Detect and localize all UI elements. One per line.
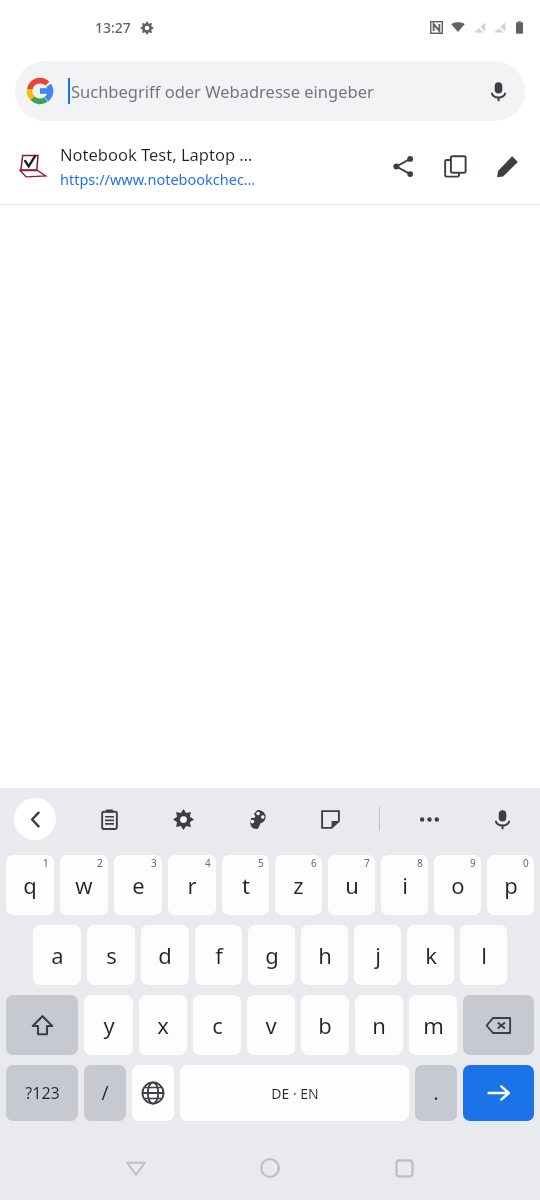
staticText: Notebook Test, Laptop …: [60, 143, 253, 165]
staticText: 4: [205, 856, 211, 870]
staticText: 9: [470, 856, 476, 870]
button[interactable]: DE · EN: [180, 1065, 409, 1121]
button[interactable]: Share: [377, 140, 429, 192]
staticText: g: [265, 940, 279, 970]
staticText: 8: [417, 856, 423, 870]
button[interactable]: z: [275, 855, 322, 915]
button[interactable]: Clipboard: [88, 798, 130, 840]
button[interactable]: Change language: [132, 1065, 174, 1121]
button[interactable]: g: [248, 925, 295, 985]
button[interactable]: .: [415, 1065, 457, 1121]
button[interactable]: More options: [408, 798, 450, 840]
button[interactable]: Shift: [6, 995, 78, 1055]
button[interactable]: t: [222, 855, 269, 915]
button[interactable]: Settings: [162, 798, 204, 840]
staticText: p: [504, 870, 518, 900]
staticText: w: [75, 870, 93, 900]
button[interactable]: r: [168, 855, 216, 915]
staticText: 5: [258, 856, 264, 870]
button[interactable]: Copy: [429, 140, 481, 192]
button[interactable]: ?123: [6, 1065, 78, 1121]
staticText: u: [345, 870, 359, 900]
staticText: 6: [311, 856, 317, 870]
staticText: y: [103, 1010, 115, 1040]
staticText: z: [293, 870, 304, 900]
button[interactable]: v: [247, 995, 295, 1055]
button[interactable]: n: [355, 995, 403, 1055]
button[interactable]: i: [381, 855, 428, 915]
button[interactable]: l: [460, 925, 507, 985]
button[interactable]: j: [354, 925, 401, 985]
staticText: s: [106, 940, 117, 970]
staticText: https://www.notebookchec…: [60, 169, 256, 189]
button[interactable]: Enter: [463, 1065, 534, 1121]
button[interactable]: Back: [14, 798, 56, 840]
staticText: n: [372, 1010, 386, 1040]
staticText: c: [212, 1010, 223, 1040]
staticText: Suchbegriff oder Webadresse eingeber: [71, 80, 374, 102]
button[interactable]: Back: [112, 1144, 160, 1192]
button[interactable]: w: [60, 855, 108, 915]
staticText: q: [23, 870, 37, 900]
button[interactable]: Theme: [236, 798, 278, 840]
staticText: e: [132, 870, 145, 900]
button[interactable]: m: [409, 995, 457, 1055]
button[interactable]: o: [434, 855, 481, 915]
staticText: m: [423, 1010, 444, 1040]
button[interactable]: u: [328, 855, 375, 915]
staticText: DE · EN: [271, 1084, 319, 1103]
button[interactable]: d: [141, 925, 189, 985]
button[interactable]: p: [487, 855, 534, 915]
button[interactable]: Edit: [481, 140, 533, 192]
button[interactable]: b: [301, 995, 349, 1055]
button[interactable]: f: [195, 925, 242, 985]
button[interactable]: Home: [246, 1144, 294, 1192]
staticText: f: [215, 940, 223, 970]
staticText: 13:27: [95, 18, 131, 37]
staticText: j: [375, 940, 381, 970]
button[interactable]: a: [33, 925, 81, 985]
staticText: t: [242, 870, 250, 900]
staticText: .: [433, 1080, 439, 1106]
staticText: a: [51, 940, 64, 970]
staticText: ?123: [25, 1082, 60, 1104]
staticText: 3: [151, 856, 157, 870]
staticText: 0: [523, 856, 529, 870]
staticText: 2: [97, 856, 103, 870]
button[interactable]: s: [87, 925, 135, 985]
staticText: x: [157, 1010, 169, 1040]
staticText: b: [318, 1010, 332, 1040]
button[interactable]: Voice search: [476, 69, 520, 113]
staticText: /: [101, 1080, 109, 1106]
button[interactable]: Voice input: [481, 798, 523, 840]
button[interactable]: Notebook Test, Laptop …: [0, 128, 540, 204]
staticText: l: [481, 940, 487, 970]
button[interactable]: Stickers: [309, 798, 351, 840]
button[interactable]: Suchbegriff oder Webadresse eingeber: [15, 61, 525, 121]
button[interactable]: c: [193, 995, 241, 1055]
button[interactable]: Recent apps: [380, 1144, 428, 1192]
button[interactable]: /: [84, 1065, 126, 1121]
staticText: 1: [43, 856, 49, 870]
button[interactable]: h: [301, 925, 348, 985]
button[interactable]: Backspace: [463, 995, 534, 1055]
staticText: h: [318, 940, 332, 970]
button[interactable]: k: [407, 925, 454, 985]
button[interactable]: q: [6, 855, 54, 915]
staticText: d: [158, 940, 172, 970]
staticText: i: [402, 870, 408, 900]
staticText: 7: [364, 856, 370, 870]
button[interactable]: x: [139, 995, 187, 1055]
staticText: r: [187, 870, 197, 900]
button[interactable]: e: [114, 855, 162, 915]
staticText: v: [265, 1010, 277, 1040]
staticText: o: [451, 870, 465, 900]
button[interactable]: y: [84, 995, 133, 1055]
staticText: k: [425, 940, 437, 970]
